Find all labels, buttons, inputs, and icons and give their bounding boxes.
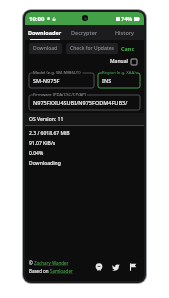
button[interactable]: Cancel <box>118 43 140 54</box>
staticText: 10:00 <box>29 15 45 23</box>
button[interactable]: Download <box>29 43 62 54</box>
staticText: 2.3 / 6018.67 MiB <box>29 130 70 137</box>
staticText: INS <box>102 77 112 84</box>
button[interactable]: Zachary Wander <box>34 260 69 266</box>
staticText: 0.04% <box>29 150 44 157</box>
staticText: 74% <box>121 15 133 22</box>
staticText: Check for Updates <box>70 45 114 52</box>
button[interactable]: Samloader <box>50 268 73 274</box>
button[interactable]: Firmware (PDA/CSC/CP/AP) <box>29 91 140 110</box>
button[interactable]: Check for Updates <box>66 43 118 54</box>
staticText: 91.07 KiB/s <box>29 140 56 147</box>
button[interactable]: Downloader <box>25 25 64 40</box>
staticText: Samloader <box>50 268 73 274</box>
staticText: Region (e.g. XAA) <box>102 70 136 76</box>
staticText: Cancel <box>121 45 137 52</box>
staticText: Zachary Wander <box>34 260 69 266</box>
staticText: Downloading <box>29 160 61 167</box>
staticText: Download <box>33 45 58 52</box>
staticText: Downloader <box>28 29 62 36</box>
staticText: Based on <box>29 268 50 274</box>
button[interactable]: Telegram <box>127 261 139 273</box>
button[interactable]: Manual <box>108 56 139 67</box>
staticText: SM-N975F <box>33 77 60 84</box>
staticText: Model (e.g. SM-N986U1) <box>33 70 81 76</box>
button[interactable]: Region (e.g. XAA) <box>98 69 140 88</box>
button[interactable]: Model (e.g. SM-N986U1) <box>29 69 94 88</box>
staticText: OS Version: 11 <box>29 116 64 123</box>
staticText: Manual <box>110 58 128 65</box>
staticText: © <box>29 260 34 266</box>
button[interactable]: History <box>104 25 144 40</box>
staticText: Decrypter <box>71 29 98 36</box>
button[interactable]: Twitter <box>110 261 122 273</box>
staticText: Firmware (PDA/CSC/CP/AP) <box>33 92 86 98</box>
staticText: History <box>115 29 134 36</box>
button[interactable]: GitHub <box>93 261 105 273</box>
button[interactable]: Decrypter <box>64 25 104 40</box>
staticText: N975FXXU4SUBI/N975FODM4FUB3/N975FXXU6FUB… <box>33 99 140 106</box>
